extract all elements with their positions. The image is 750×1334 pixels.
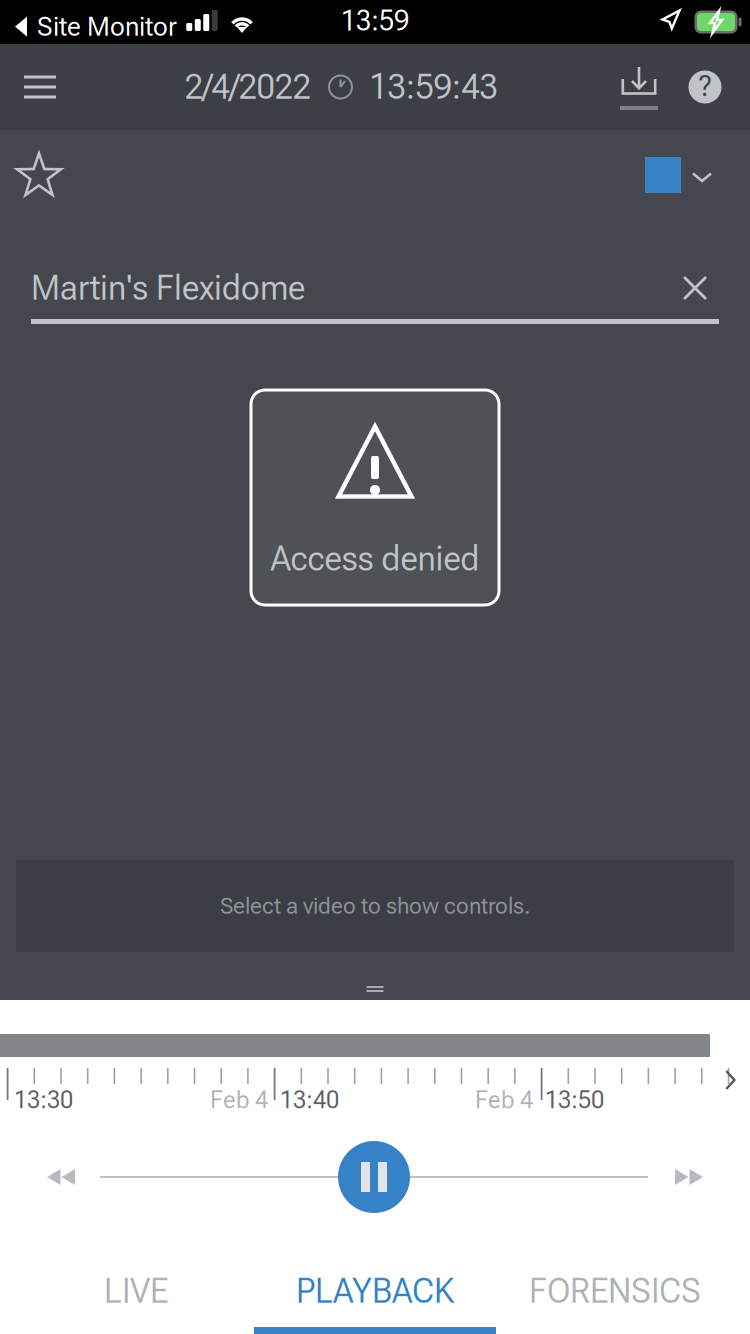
staticText: Access denied (270, 538, 479, 579)
button[interactable]: Next (710, 1060, 750, 1100)
staticText: LIVE (104, 1271, 168, 1311)
staticText: ? (698, 69, 711, 103)
button[interactable]: Menu (0, 44, 80, 130)
button[interactable]: Pause (338, 1141, 410, 1213)
staticText: Select a video to show controls. (220, 893, 530, 919)
button[interactable]: FORENSICS (494, 1239, 736, 1334)
button[interactable]: Download (602, 45, 676, 131)
staticText: 13:59:43 (369, 67, 497, 107)
staticText: Feb 4 (475, 1086, 533, 1114)
button[interactable]: PLAYBACK (254, 1230, 496, 1334)
staticText: 13:50 (545, 1086, 604, 1114)
staticText: 13:30 (14, 1086, 73, 1114)
staticText: Feb 4 (210, 1086, 268, 1114)
button[interactable]: Help (670, 44, 740, 130)
button[interactable]: LIVE (15, 1239, 257, 1334)
staticText: Site Monitor (37, 11, 177, 42)
staticText: 13:40 (280, 1086, 339, 1114)
staticText: 13:59 (341, 5, 409, 37)
button[interactable]: Clear (671, 268, 719, 308)
button[interactable]: Rewind (0, 1141, 100, 1213)
button[interactable]: Favorite (0, 130, 78, 220)
staticText: Martin's Flexidome (31, 268, 305, 308)
button[interactable]: Fast forward (648, 1141, 750, 1213)
staticText: FORENSICS (529, 1271, 701, 1311)
button[interactable]: Stream quality (645, 130, 750, 220)
staticText: PLAYBACK (296, 1271, 454, 1311)
staticText: 2/4/2022 (184, 67, 310, 107)
